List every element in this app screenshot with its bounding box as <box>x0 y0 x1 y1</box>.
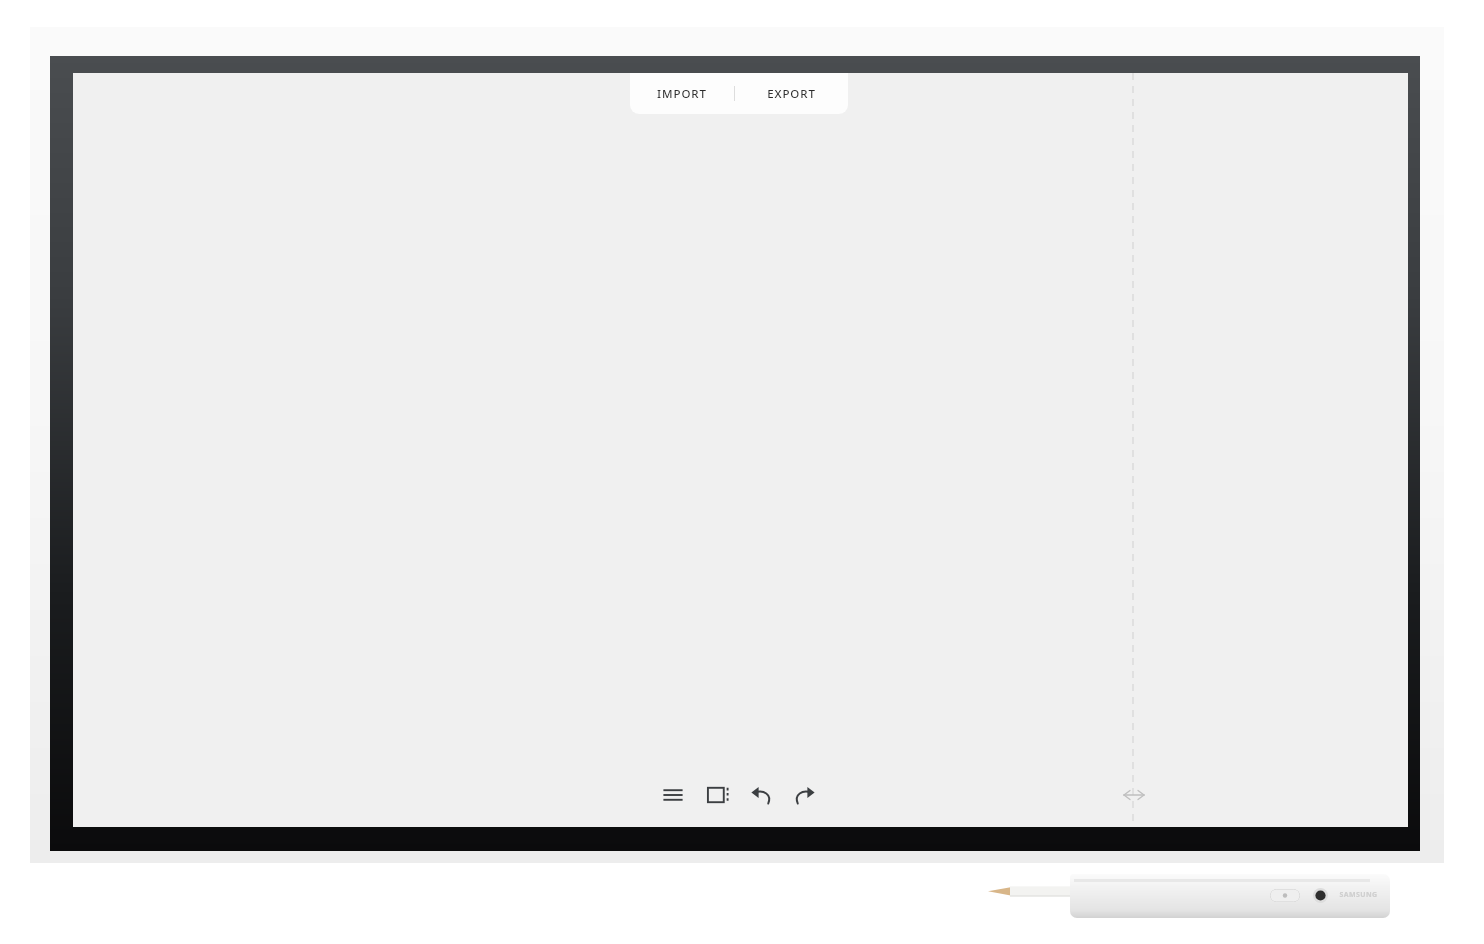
button[interactable]: Resize split screen <box>1120 781 1148 809</box>
button[interactable]: Undo <box>743 777 779 813</box>
button[interactable]: Menu <box>655 777 691 813</box>
staticText: EXPORT <box>767 86 816 102</box>
button[interactable]: Tray button <box>1270 889 1300 902</box>
button[interactable]: Tray button <box>1070 874 1390 918</box>
staticText: IMPORT <box>657 86 707 102</box>
button[interactable]: EXPORT <box>735 73 848 114</box>
button[interactable]: IMPORT <box>630 73 734 114</box>
button[interactable]: Redo <box>787 777 823 813</box>
staticText: SAMSUNG <box>1339 890 1378 900</box>
button[interactable]: Page <box>700 777 736 813</box>
